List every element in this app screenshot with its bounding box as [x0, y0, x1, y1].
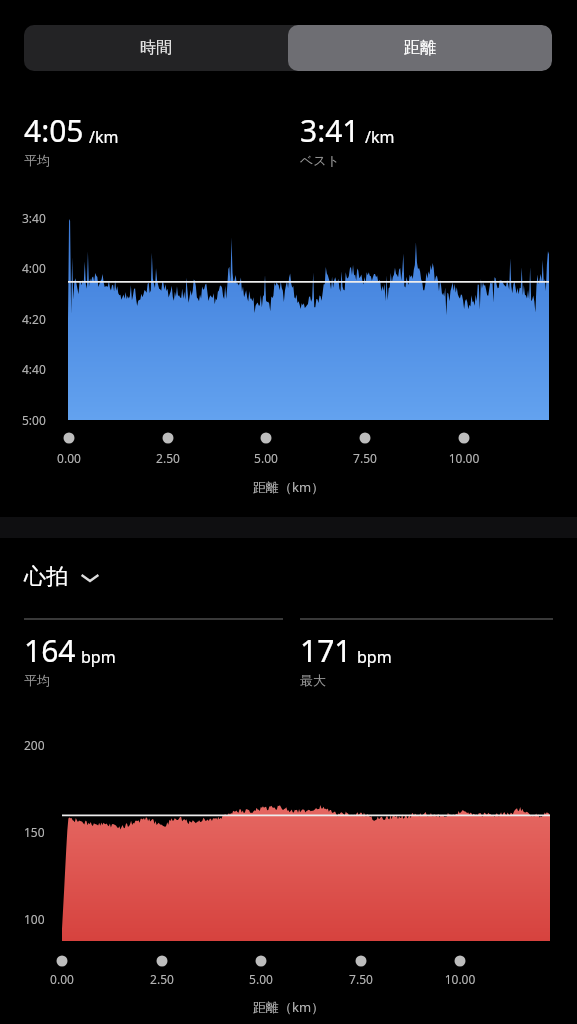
- staticText: ベスト: [300, 152, 340, 168]
- other: 心拍を展開: [80, 567, 100, 587]
- staticText: 最大: [300, 672, 326, 688]
- staticText: /km: [89, 126, 119, 148]
- staticText: 5:00: [22, 412, 46, 428]
- staticText: 0.00: [27, 971, 97, 987]
- staticText: 100: [24, 911, 45, 927]
- staticText: 平均: [24, 152, 50, 168]
- staticText: 5.00: [226, 971, 296, 987]
- staticText: 10.00: [425, 971, 495, 987]
- staticText: bpm: [357, 646, 392, 668]
- staticText: 171: [300, 630, 352, 671]
- staticText: 心拍: [24, 563, 68, 591]
- button[interactable]: 時間: [24, 25, 288, 71]
- staticText: 時間: [140, 38, 172, 58]
- staticText: /km: [365, 126, 395, 148]
- staticText: 距離: [404, 38, 436, 58]
- staticText: 5.00: [231, 450, 301, 466]
- staticText: 距離（km）: [253, 478, 325, 496]
- staticText: 距離（km）: [253, 998, 325, 1016]
- staticText: 4:40: [22, 361, 46, 377]
- staticText: 2.50: [127, 971, 197, 987]
- staticText: 3:40: [22, 210, 46, 226]
- staticText: 平均: [24, 672, 50, 688]
- staticText: 7.50: [326, 971, 396, 987]
- staticText: 3:41: [300, 110, 360, 151]
- staticText: 10.00: [429, 450, 499, 466]
- staticText: 150: [24, 824, 45, 840]
- button[interactable]: 距離: [288, 25, 552, 71]
- button[interactable]: 心拍: [24, 563, 100, 591]
- staticText: 4:00: [22, 260, 46, 276]
- staticText: 200: [24, 737, 45, 753]
- staticText: 164: [24, 630, 76, 671]
- staticText: 0.00: [34, 450, 104, 466]
- staticText: 4:05: [24, 110, 84, 151]
- staticText: 7.50: [330, 450, 400, 466]
- staticText: 4:20: [22, 311, 46, 327]
- staticText: bpm: [81, 646, 116, 668]
- staticText: 2.50: [133, 450, 203, 466]
